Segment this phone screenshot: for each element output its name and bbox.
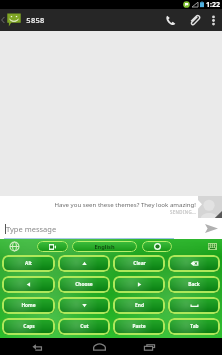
button[interactable]: Home [74, 338, 124, 355]
button[interactable]: More options [206, 9, 220, 31]
button[interactable]: Cut [58, 318, 110, 335]
button[interactable]: Hide keyboard [205, 239, 219, 253]
staticText: End [135, 302, 144, 309]
button[interactable]: Down [58, 297, 110, 314]
staticText: 1:22 [206, 0, 220, 9]
button[interactable]: Choose [58, 276, 110, 293]
staticText: Tab [190, 323, 199, 330]
button[interactable]: Space [168, 297, 220, 314]
other: Down [80, 301, 89, 310]
button[interactable]: Back [0, 338, 74, 355]
button[interactable]: Caps [2, 318, 55, 335]
staticText: Clear [133, 260, 146, 267]
button[interactable]: Tab [168, 318, 220, 335]
button[interactable]: Attach [182, 9, 206, 31]
button[interactable]: Paste [113, 318, 165, 335]
button[interactable]: Home [2, 297, 55, 314]
button[interactable]: Keyboard layout [37, 241, 68, 252]
button[interactable]: Input method [8, 240, 21, 253]
button[interactable]: Clear [113, 255, 165, 272]
staticText: Have you seen these themes? They look am… [54, 200, 196, 208]
other: Backspace [190, 259, 199, 268]
staticText: 5858 [26, 15, 45, 25]
staticText: Back [188, 281, 200, 288]
staticText: Choose [75, 281, 93, 288]
button[interactable]: Back [168, 276, 220, 293]
other: Right [135, 280, 144, 289]
button[interactable]: Recent apps [124, 338, 174, 355]
button[interactable]: Alt [2, 255, 55, 272]
button[interactable]: Navigate up [0, 9, 6, 31]
staticText: Cut [80, 323, 89, 330]
button[interactable]: Right [113, 276, 165, 293]
button[interactable]: Backspace [168, 255, 220, 272]
staticText: Alt [25, 260, 32, 267]
staticText: Home [21, 302, 36, 309]
staticText: SENDING… [169, 209, 196, 215]
staticText: Caps [23, 323, 35, 330]
other: Space [190, 301, 199, 310]
staticText: Paste [132, 323, 146, 330]
button[interactable]: Emoji [142, 241, 172, 252]
other: Left [24, 280, 33, 289]
staticText: Type message [6, 224, 57, 234]
staticText: English [94, 243, 115, 251]
button[interactable]: Send [200, 218, 222, 239]
button[interactable]: End [113, 297, 165, 314]
button[interactable]: Up [58, 255, 110, 272]
button[interactable]: Left [2, 276, 55, 293]
button[interactable]: English [72, 241, 137, 252]
button[interactable]: Call [158, 9, 182, 31]
other: Up [80, 259, 89, 268]
